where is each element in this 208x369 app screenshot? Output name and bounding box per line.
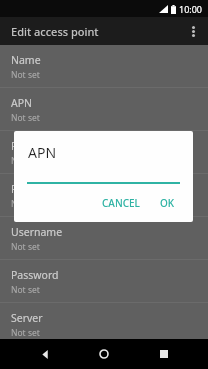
button[interactable]: Password <box>0 260 208 302</box>
staticText: Not set <box>11 112 40 124</box>
button[interactable]: Port <box>0 174 208 216</box>
staticText: 10:00 <box>179 3 203 15</box>
staticText: Port <box>11 182 32 196</box>
staticText: Name <box>11 53 41 67</box>
staticText: Password <box>11 268 59 282</box>
staticText: Edit access point <box>11 24 99 39</box>
button[interactable]: OK <box>152 190 183 216</box>
button[interactable]: More options <box>181 19 205 43</box>
staticText: Not set <box>11 284 40 296</box>
staticText: Not set <box>11 327 40 339</box>
staticText: Server <box>11 311 43 325</box>
staticText: Not set <box>11 69 40 81</box>
staticText: OK <box>160 196 175 210</box>
staticText: Not set <box>11 155 40 167</box>
button[interactable]: Recents <box>149 339 179 369</box>
staticText: Proxy <box>11 139 39 153</box>
button[interactable]: Name <box>0 45 208 87</box>
button[interactable]: Username <box>0 217 208 259</box>
button[interactable]: Proxy <box>0 131 208 173</box>
button[interactable]: Home <box>89 339 119 369</box>
button[interactable]: APN <box>0 88 208 130</box>
button[interactable]: CANCEL <box>94 190 148 216</box>
staticText: CANCEL <box>102 196 140 210</box>
staticText: Not set <box>11 198 40 210</box>
staticText: Not set <box>11 241 40 253</box>
staticText: APN <box>28 143 57 162</box>
button[interactable]: Server <box>0 303 208 339</box>
staticText: APN <box>11 96 33 110</box>
staticText: Username <box>11 225 63 239</box>
button[interactable]: Back <box>30 339 60 369</box>
